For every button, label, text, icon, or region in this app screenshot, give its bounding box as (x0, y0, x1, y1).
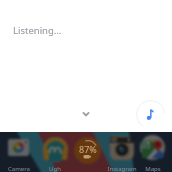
button[interactable] (43, 137, 68, 162)
staticText: Ugh (33, 165, 77, 172)
button[interactable] (8, 139, 29, 156)
button[interactable]: Identify song (136, 100, 165, 129)
button[interactable] (140, 135, 165, 160)
staticText: Maps (131, 165, 172, 172)
staticText: 87% (79, 143, 97, 155)
staticText: Camera (0, 165, 41, 172)
button[interactable] (74, 137, 101, 164)
staticText: Instagram (100, 165, 144, 172)
button[interactable]: Collapse (78, 104, 94, 120)
staticText: Listening… (13, 24, 62, 37)
button[interactable] (110, 136, 134, 160)
